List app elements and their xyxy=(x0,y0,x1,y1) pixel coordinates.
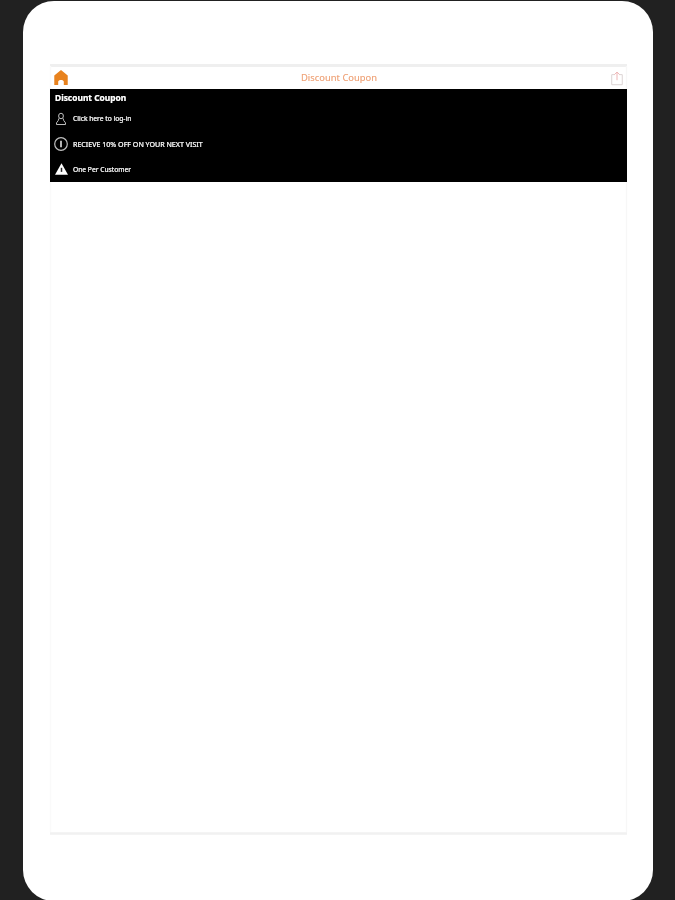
staticText: Discount Coupon xyxy=(301,71,378,84)
staticText: One Per Customer xyxy=(73,165,131,174)
staticText: Click here to log-in xyxy=(73,114,132,123)
button[interactable]: Click here to log-in xyxy=(54,112,132,126)
staticText: RECIEVE 10% OFF ON YOUR NEXT VISIT xyxy=(73,139,203,149)
button[interactable]: Share xyxy=(606,67,628,88)
button[interactable]: Discount Coupon xyxy=(292,68,386,87)
button[interactable]: One Per Customer xyxy=(54,162,131,176)
button[interactable]: Home xyxy=(50,67,72,88)
button[interactable]: RECIEVE 10% OFF ON YOUR NEXT VISIT xyxy=(54,137,203,151)
staticText: Discount Coupon xyxy=(55,92,127,103)
